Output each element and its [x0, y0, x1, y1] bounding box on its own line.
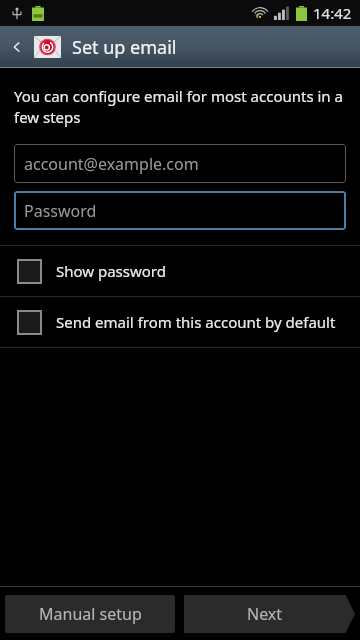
button[interactable]: Next [184, 595, 355, 633]
staticText: Send email from this account by default [56, 312, 336, 332]
staticText: Show password [56, 261, 166, 281]
staticText: Next [247, 603, 283, 625]
button[interactable]: Manual setup [5, 595, 175, 633]
button[interactable]: account@example.com [14, 144, 346, 183]
staticText: Password [24, 200, 97, 222]
staticText: account@example.com [24, 153, 199, 175]
staticText: 14:42 [313, 3, 352, 23]
button[interactable]: Show password [0, 246, 360, 296]
staticText: You can configure email for most account… [14, 86, 346, 128]
button[interactable]: Back [0, 26, 34, 68]
button[interactable]: Send email from this account by default [0, 297, 360, 347]
staticText: Manual setup [39, 603, 142, 625]
button[interactable]: Password [14, 191, 346, 230]
staticText: Set up email [72, 35, 177, 60]
